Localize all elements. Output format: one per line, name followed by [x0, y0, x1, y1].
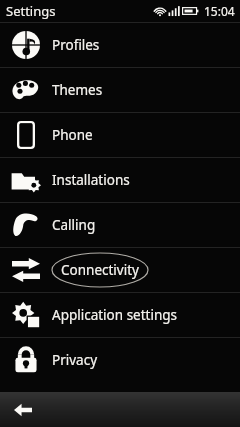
staticText: Profiles — [52, 36, 100, 54]
staticText: Privacy — [52, 351, 98, 369]
staticText: Application settings — [52, 306, 178, 324]
staticText: Phone — [52, 126, 93, 144]
staticText: Connectivity — [61, 261, 139, 279]
button[interactable]: Application settings — [0, 293, 240, 337]
staticText: Settings — [6, 2, 56, 20]
staticText: Installations — [52, 171, 130, 189]
button[interactable]: Profiles — [0, 23, 240, 67]
staticText: Themes — [52, 81, 103, 99]
button[interactable]: Back — [8, 395, 38, 425]
button[interactable]: Phone — [0, 113, 240, 157]
staticText: 15:04 — [204, 3, 235, 19]
button[interactable]: Privacy — [0, 338, 240, 382]
staticText: Calling — [52, 216, 96, 234]
button[interactable]: Connectivity — [0, 248, 240, 292]
button[interactable]: Installations — [0, 158, 240, 202]
button[interactable]: Themes — [0, 68, 240, 112]
button[interactable]: Calling — [0, 203, 240, 247]
